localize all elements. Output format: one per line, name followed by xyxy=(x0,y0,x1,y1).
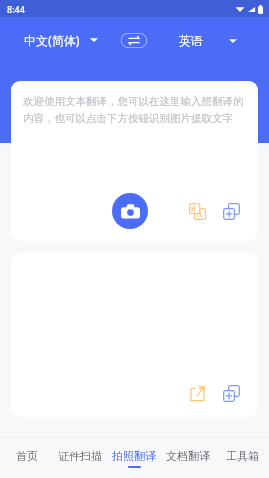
button[interactable]: 首页 xyxy=(0,438,53,478)
staticText: 中文(简体) xyxy=(24,32,80,48)
button[interactable]: Translate xyxy=(184,198,210,224)
staticText: 工具箱 xyxy=(226,449,259,463)
staticText: 拍照翻译 xyxy=(112,449,156,463)
staticText: 欢迎使用文本翻译，您可以在这里输入想翻译的内容，也可以点击下方按钮识别图片提取文… xyxy=(23,95,246,125)
button[interactable]: 工具箱 xyxy=(215,438,269,478)
button[interactable]: 拍照翻译 xyxy=(107,438,161,478)
staticText: 文档翻译 xyxy=(166,449,210,463)
staticText: 英语 xyxy=(179,33,203,48)
button[interactable]: Copy xyxy=(218,380,244,406)
staticText: 首页 xyxy=(16,449,38,463)
staticText: 8:44 xyxy=(7,3,25,15)
button[interactable]: Copy xyxy=(218,198,244,224)
button[interactable]: 证件扫描 xyxy=(53,438,107,478)
button[interactable]: Camera xyxy=(112,193,148,229)
button[interactable]: 中文(简体) xyxy=(0,32,121,48)
button[interactable]: Swap languages xyxy=(121,33,147,48)
button[interactable]: Share xyxy=(184,380,210,406)
button[interactable]: 英语 xyxy=(147,33,269,48)
staticText: 证件扫描 xyxy=(58,449,102,463)
button[interactable]: 文档翻译 xyxy=(161,438,215,478)
